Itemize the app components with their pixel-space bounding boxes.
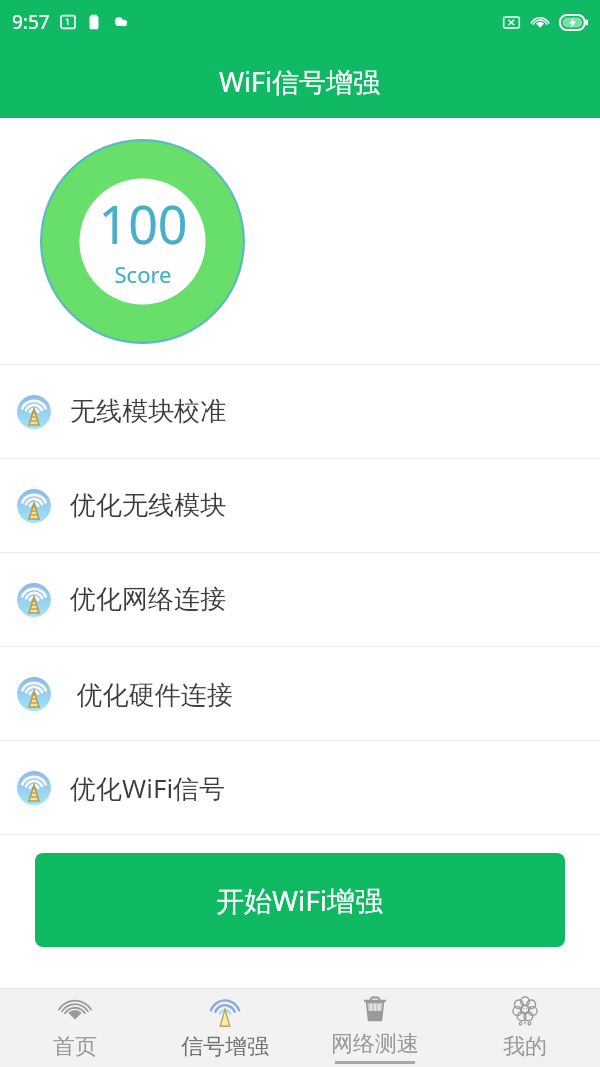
button[interactable]: 优化无线模块 — [0, 459, 600, 552]
staticText: 优化无线模块 — [70, 489, 226, 522]
button[interactable]: 优化硬件连接 — [0, 647, 600, 740]
staticText: 网络测速 — [331, 1030, 419, 1058]
button[interactable]: 首页 — [0, 989, 150, 1067]
button[interactable]: 我的 — [450, 989, 600, 1067]
staticText: 优化网络连接 — [70, 583, 226, 616]
staticText: 信号增强 — [181, 1033, 269, 1061]
button[interactable]: 网络测速 — [300, 989, 450, 1067]
staticText: 首页 — [53, 1033, 97, 1061]
staticText: Score — [114, 259, 172, 289]
staticText: 优化WiFi信号 — [70, 770, 226, 806]
staticText: 开始WiFi增强 — [216, 881, 384, 919]
button[interactable]: 优化WiFi信号 — [0, 741, 600, 834]
staticText: 我的 — [503, 1033, 547, 1061]
staticText: 9:57 — [12, 9, 50, 35]
button[interactable]: 无线模块校准 — [0, 365, 600, 458]
button[interactable]: 信号增强 — [150, 989, 300, 1067]
button[interactable]: 开始WiFi增强 — [35, 853, 565, 947]
staticText: 100 — [98, 188, 188, 259]
staticText: WiFi信号增强 — [219, 63, 381, 100]
staticText: 无线模块校准 — [70, 395, 226, 428]
button[interactable]: 优化网络连接 — [0, 553, 600, 646]
staticText: 优化硬件连接 — [70, 676, 233, 712]
